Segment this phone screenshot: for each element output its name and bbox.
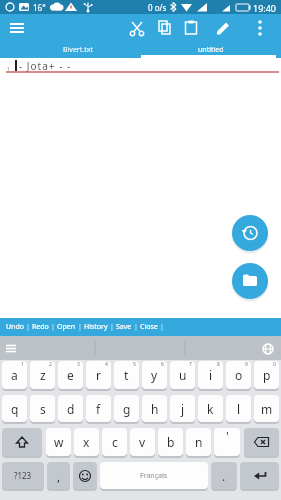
button[interactable]: c [102,428,127,456]
button[interactable]: ' [214,428,240,456]
button[interactable]: s [30,395,55,422]
button[interactable]: g [114,395,139,422]
button[interactable]: w [46,428,71,456]
staticText: | [134,322,138,332]
button[interactable]: q [2,395,27,422]
staticText: | [26,322,30,332]
button[interactable]: History [82,322,110,332]
staticText: h [151,401,159,417]
button[interactable]: Bivert.txt [0,42,140,58]
staticText: Close [140,322,158,332]
button[interactable]: o [226,361,251,389]
button[interactable]: j [170,395,195,422]
button[interactable]: a [2,361,27,389]
button[interactable]: untitled [140,42,281,58]
staticText: i [209,367,213,383]
staticText: n [195,434,203,450]
button[interactable]: r [86,361,111,389]
staticText: t [124,367,129,383]
button[interactable]: i [198,361,223,389]
staticText: k [207,401,214,417]
button[interactable]: u [170,361,195,389]
button[interactable] [0,14,32,42]
button[interactable] [240,462,279,489]
button[interactable]: , [47,462,70,489]
button[interactable] [246,14,274,42]
staticText: 16° [33,2,46,13]
staticText: q [11,401,19,417]
button[interactable] [208,14,236,42]
staticText: z [40,367,46,383]
staticText: f [96,401,101,417]
staticText: p [263,367,271,383]
staticText: x [83,434,90,450]
staticText: v [139,434,146,450]
staticText: History [84,322,108,332]
button[interactable]: Redo [30,322,51,332]
button[interactable]: n [186,428,211,456]
button[interactable]: v [130,428,155,456]
button[interactable] [2,428,42,456]
button[interactable]: t [114,361,139,389]
staticText: u [179,367,187,383]
staticText: c [112,434,118,450]
staticText: 1 [21,361,24,368]
button[interactable]: Open [55,322,78,332]
staticText: g [123,401,131,417]
button[interactable]: ?123 [2,462,44,489]
staticText: Français [140,471,168,481]
button[interactable]: x [74,428,99,456]
button[interactable]: m [254,395,279,422]
staticText: | [160,322,164,332]
button[interactable]: h [142,395,167,422]
staticText: 7 [189,361,192,368]
staticText: 3 [77,361,80,368]
staticText: Redo [32,322,49,332]
staticText: 2 [49,361,52,368]
button[interactable] [124,14,150,42]
button[interactable] [73,462,97,489]
button[interactable]: Save [114,322,134,332]
staticText: Bivert.txt [63,45,93,55]
button[interactable]: e [58,361,83,389]
button[interactable]: . [211,462,237,489]
staticText: 5 [133,361,136,368]
staticText: Save [116,322,132,332]
staticText: ' [226,428,229,444]
staticText: s [40,401,46,417]
staticText: l [237,401,241,417]
button[interactable] [0,336,28,360]
button[interactable]: Français [100,462,208,489]
staticText: w [54,434,64,450]
staticText: 4 [105,361,108,368]
button[interactable]: p [254,361,279,389]
staticText: ?123 [14,470,32,481]
button[interactable] [232,215,268,251]
staticText: Undo [6,322,24,332]
button[interactable]: y [142,361,167,389]
staticText: 9 [245,361,248,368]
button[interactable] [151,14,177,42]
staticText: | [51,322,55,332]
staticText: - Jota+ - - [19,59,72,73]
button[interactable]: b [158,428,183,456]
button[interactable]: d [58,395,83,422]
button[interactable] [244,428,279,456]
staticText: . [222,468,226,484]
button[interactable]: l [226,395,251,422]
button[interactable]: Undo [4,322,26,332]
button[interactable]: k [198,395,223,422]
staticText: 6 [161,361,164,368]
staticText: | [78,322,82,332]
staticText: 19:40 [253,2,277,14]
button[interactable]: z [30,361,55,389]
staticText: j [181,401,185,417]
button[interactable] [178,14,204,42]
staticText: e [67,367,74,383]
staticText: y [151,367,158,383]
staticText: m [261,401,273,417]
button[interactable] [232,263,268,299]
button[interactable]: Close [138,322,160,332]
button[interactable] [254,336,281,360]
button[interactable]: f [86,395,111,422]
